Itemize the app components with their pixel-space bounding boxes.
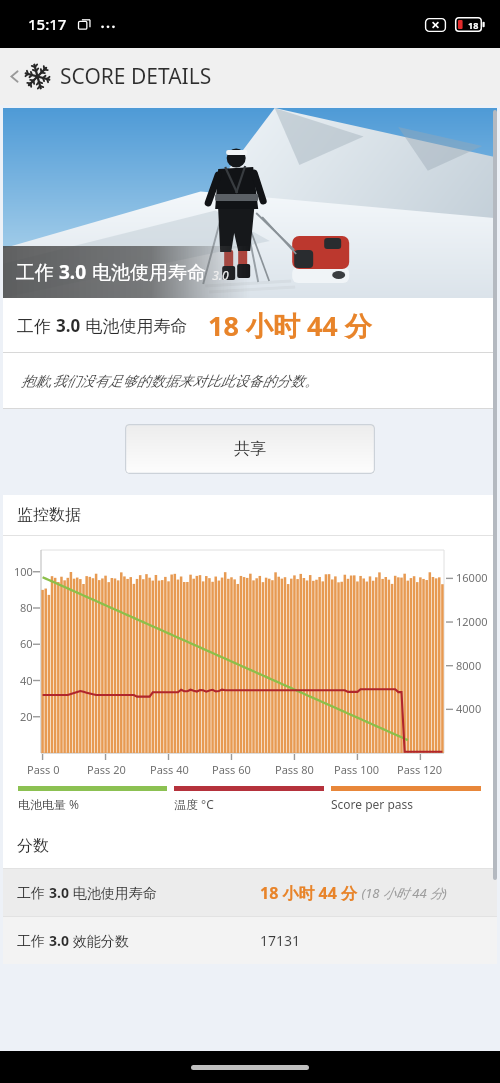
staticText: 17131 xyxy=(260,931,301,950)
staticText: 电池使用寿命 xyxy=(87,259,206,285)
staticText: 监控数据 xyxy=(17,505,81,525)
staticText: 4000 xyxy=(456,701,482,716)
staticText: 抱歉,我们没有足够的数据来对比此设备的分数。 xyxy=(21,371,319,390)
staticText: 电池使用寿命 xyxy=(69,883,157,902)
staticText: 3.0 xyxy=(49,883,69,902)
staticText: (18 小时 44 分) xyxy=(358,884,447,902)
staticText: 工作 xyxy=(17,883,49,902)
staticText: 12000 xyxy=(456,614,488,629)
staticText: Pass 120 xyxy=(397,762,443,777)
staticText: Score per pass xyxy=(331,796,414,812)
staticText: 温度 °C xyxy=(174,796,214,812)
staticText: 18 小时 44 分 xyxy=(260,882,358,904)
staticText: 3.0 xyxy=(49,931,69,950)
button[interactable]: 工作 xyxy=(3,869,497,916)
staticText: 18 小时 44 分 xyxy=(208,307,372,344)
staticText: 3.0 xyxy=(59,259,87,285)
staticText: 工作 xyxy=(17,314,56,337)
button[interactable]: Back xyxy=(0,60,24,93)
staticText: Pass 20 xyxy=(87,762,126,777)
staticText: 分数 xyxy=(17,836,49,856)
staticText: 20 xyxy=(20,709,33,724)
staticText: 8000 xyxy=(456,658,482,673)
button[interactable]: 工作 xyxy=(3,917,497,964)
staticText: 40 xyxy=(20,673,33,688)
staticText: Pass 40 xyxy=(150,762,189,777)
staticText: 15:17 xyxy=(28,14,67,34)
staticText: 共享 xyxy=(234,439,266,459)
staticText: 工作 xyxy=(17,931,49,950)
staticText: 工作 xyxy=(16,259,59,285)
staticText: 3.0 xyxy=(56,314,81,337)
staticText: Pass 80 xyxy=(275,762,314,777)
staticText: 16000 xyxy=(456,570,488,585)
staticText: 80 xyxy=(20,600,33,615)
staticText: 电池使用寿命 xyxy=(81,314,188,337)
staticText: 3.0 xyxy=(206,267,229,283)
staticText: 100 xyxy=(14,564,33,579)
staticText: 18 xyxy=(468,19,479,31)
button[interactable]: 共享 xyxy=(125,424,375,474)
staticText: 60 xyxy=(20,636,33,651)
staticText: Pass 0 xyxy=(27,762,60,777)
staticText: 电池电量 % xyxy=(18,796,80,812)
staticText: SCORE DETAILS xyxy=(60,62,212,91)
staticText: Pass 100 xyxy=(334,762,380,777)
staticText: 效能分数 xyxy=(69,931,129,950)
staticText: Pass 60 xyxy=(212,762,251,777)
